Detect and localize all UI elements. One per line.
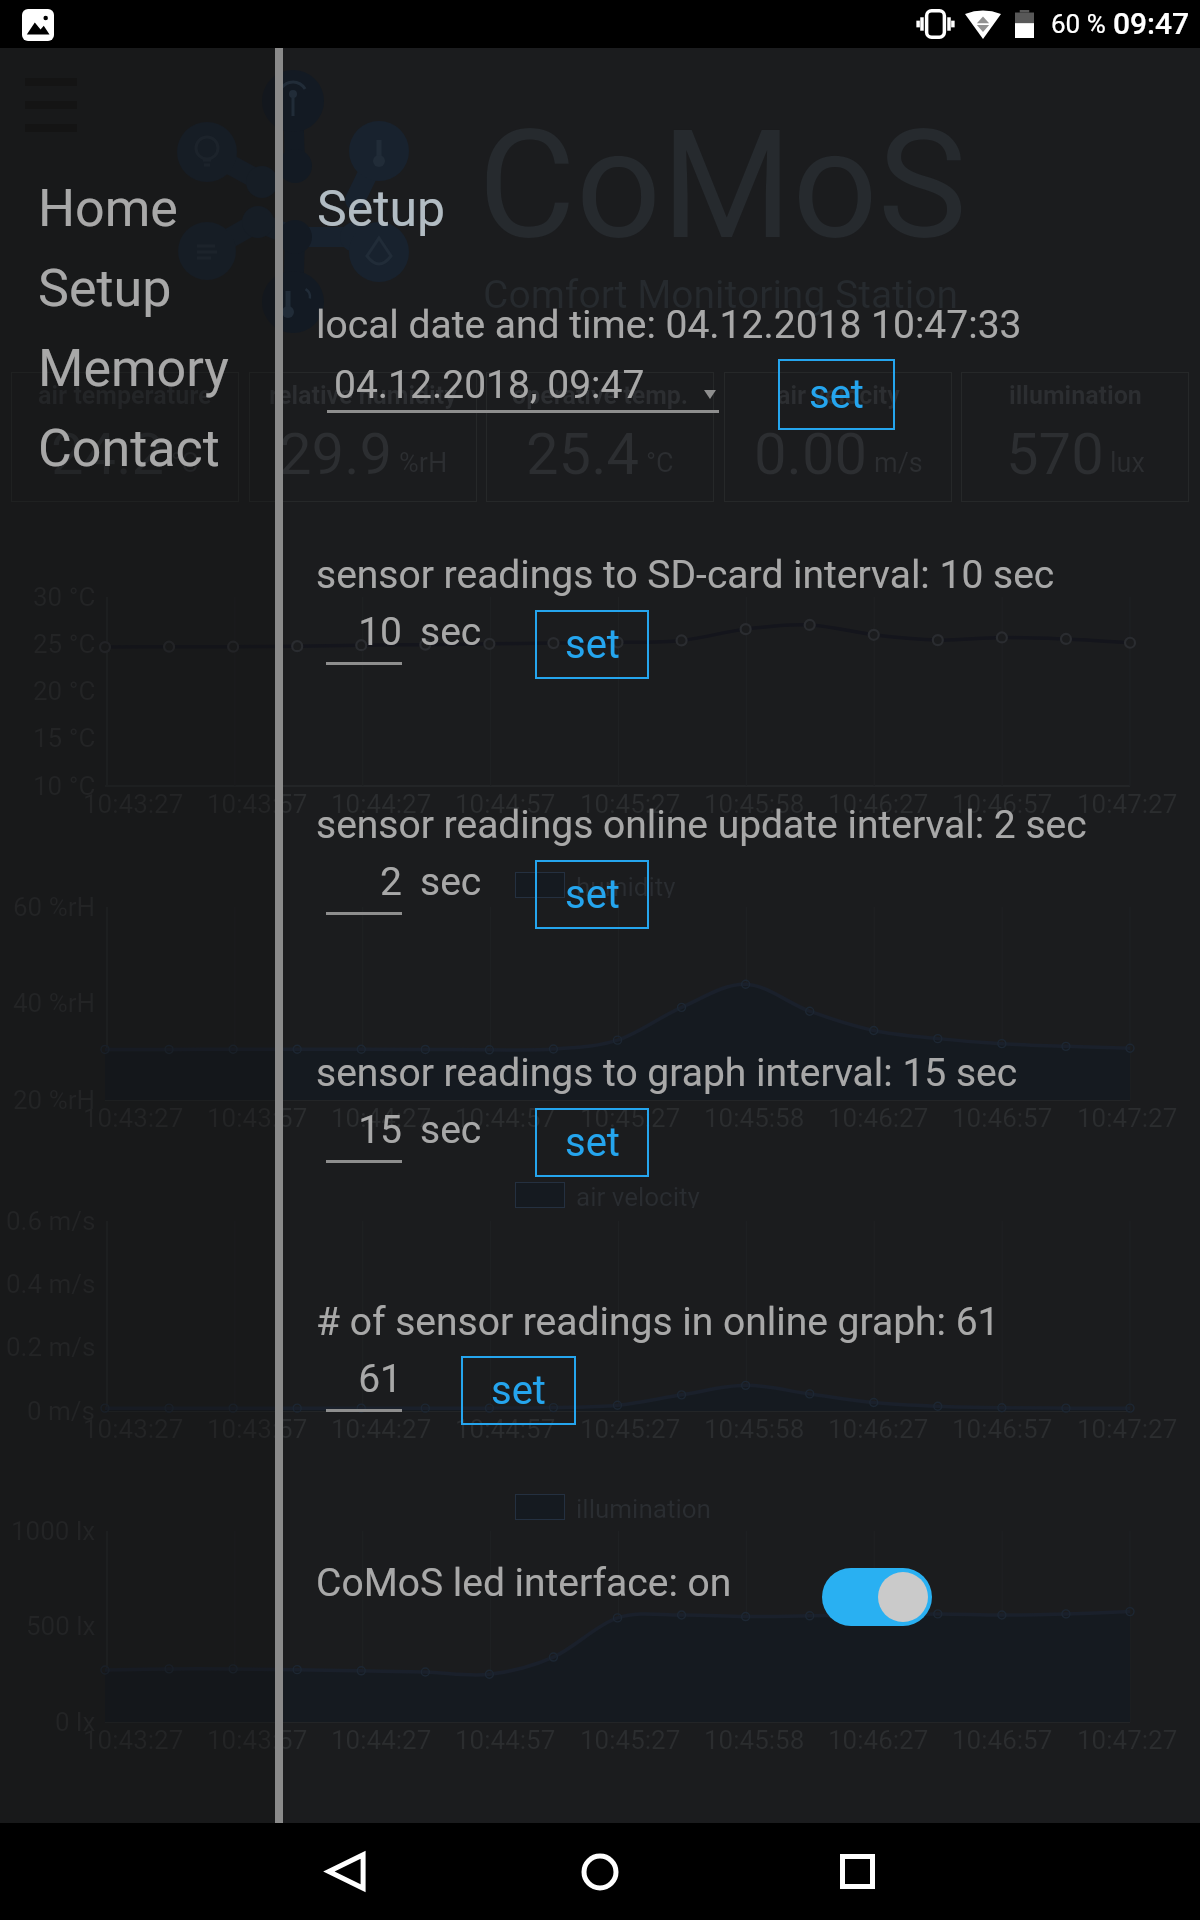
staticText: 10:44:57 — [455, 1103, 556, 1133]
staticText: sec — [420, 859, 482, 905]
staticText: 25 °C — [33, 629, 96, 659]
staticText: 10:46:57 — [952, 1103, 1053, 1133]
staticText: sec — [420, 609, 482, 655]
button[interactable]: air temperature — [11, 372, 239, 502]
staticText: 10:47:27 — [1077, 1725, 1178, 1755]
button[interactable]: Toggle CoMoS led interface — [822, 1568, 932, 1626]
staticText: 15 — [358, 1107, 402, 1153]
staticText: Home — [38, 178, 178, 239]
button[interactable]: operative temp. — [486, 372, 714, 502]
staticText: 25.4 — [526, 420, 640, 488]
staticText: 0.2 m/s — [6, 1332, 96, 1362]
staticText: air velocity — [777, 381, 900, 410]
staticText: 10:47:27 — [1077, 1103, 1178, 1133]
staticText: Contact — [38, 418, 220, 479]
staticText: set — [809, 371, 864, 418]
staticText: 1000 lx — [11, 1516, 96, 1546]
button[interactable]: Memory — [0, 328, 275, 408]
staticText: 04.12.2018, 09:47 — [334, 362, 645, 408]
button[interactable]: set — [535, 860, 649, 929]
staticText: 09:47 — [1113, 6, 1190, 41]
staticText: 10 — [358, 609, 402, 655]
staticText: lux — [1110, 447, 1145, 479]
button[interactable]: Recent apps — [797, 1823, 917, 1920]
staticText: set — [565, 1119, 620, 1166]
staticText: humidity — [576, 872, 676, 898]
staticText: 20 °C — [33, 676, 96, 706]
staticText: 10:45:27 — [580, 789, 681, 819]
staticText: 10:47:27 — [1077, 789, 1178, 819]
staticText: 24.2 — [51, 420, 165, 488]
staticText: 10:44:57 — [455, 1414, 556, 1444]
staticText: 10:44:27 — [331, 1103, 432, 1133]
staticText: °C — [646, 447, 674, 479]
staticText: 10:44:27 — [331, 1414, 432, 1444]
staticText: 30 °C — [33, 582, 96, 612]
staticText: Comfort Monitoring Station — [483, 272, 959, 318]
staticText: 10:44:27 — [331, 789, 432, 819]
staticText: air velocity — [576, 1182, 700, 1208]
staticText: 10:46:27 — [828, 1725, 929, 1755]
staticText: 10:43:27 — [83, 1414, 184, 1444]
staticText: air temperature — [38, 381, 212, 410]
staticText: 0.6 m/s — [6, 1206, 96, 1236]
staticText: CoMoS — [478, 98, 967, 274]
staticText: 10:45:58 — [704, 1725, 805, 1755]
staticText: %rH — [399, 447, 448, 479]
button[interactable]: Contact — [0, 408, 275, 488]
staticText: 10:45:58 — [704, 1414, 805, 1444]
staticText: sec — [420, 1107, 482, 1153]
button[interactable]: Back — [286, 1823, 406, 1920]
button[interactable]: set — [778, 359, 895, 430]
staticText: operative temp. — [512, 381, 689, 410]
staticText: set — [491, 1367, 546, 1414]
staticText: 2 — [380, 859, 402, 905]
staticText: 10:46:57 — [952, 1414, 1053, 1444]
staticText: 570 — [1006, 420, 1104, 488]
staticText: 10:44:57 — [455, 1725, 556, 1755]
staticText: relative humidity — [269, 381, 457, 410]
staticText: m/s — [874, 447, 923, 479]
staticText: 29.9 — [279, 420, 393, 488]
staticText: 10:44:27 — [331, 1725, 432, 1755]
button[interactable]: set — [535, 610, 649, 679]
staticText: °C — [171, 447, 199, 479]
button[interactable]: set — [461, 1356, 576, 1425]
staticText: 10:43:57 — [207, 1725, 308, 1755]
staticText: 10:43:57 — [207, 789, 308, 819]
staticText: 60 % — [1051, 9, 1106, 39]
staticText: 10:45:58 — [704, 789, 805, 819]
button[interactable]: Setup — [0, 248, 275, 328]
staticText: 10:44:57 — [455, 789, 556, 819]
staticText: 500 lx — [26, 1611, 96, 1641]
staticText: local date and time: 04.12.2018 10:47:33 — [316, 302, 1022, 348]
staticText: 60 %rH — [13, 892, 96, 922]
staticText: 10:45:27 — [580, 1725, 681, 1755]
staticText: 10 °C — [33, 771, 96, 801]
staticText: 10:45:27 — [580, 1414, 681, 1444]
staticText: 10:47:27 — [1077, 1414, 1178, 1444]
staticText: 61 — [358, 1356, 402, 1402]
staticText: 10:43:27 — [83, 1725, 184, 1755]
button[interactable]: Home — [540, 1823, 660, 1920]
staticText: # of sensor readings in online graph: 61 — [316, 1299, 1000, 1345]
staticText: 10:43:57 — [207, 1103, 308, 1133]
staticText: 10:46:57 — [952, 1725, 1053, 1755]
staticText: 0.00 — [754, 420, 868, 488]
staticText: 10:45:58 — [704, 1103, 805, 1133]
staticText: 10:43:27 — [83, 1103, 184, 1133]
staticText: 20 %rH — [13, 1085, 96, 1115]
button[interactable]: relative humidity — [249, 372, 477, 502]
button[interactable]: air velocity — [724, 372, 952, 502]
staticText: sensor readings online update interval: … — [316, 802, 1087, 848]
button[interactable]: Home — [0, 168, 275, 248]
staticText: 0 lx — [55, 1707, 96, 1737]
staticText: Setup — [317, 180, 446, 239]
staticText: 10:45:27 — [580, 1103, 681, 1133]
staticText: 10:43:57 — [207, 1414, 308, 1444]
staticText: CoMoS led interface: on — [316, 1560, 732, 1606]
button[interactable]: illumination — [961, 372, 1189, 502]
staticText: 0.4 m/s — [6, 1269, 96, 1299]
button[interactable]: set — [535, 1108, 649, 1177]
